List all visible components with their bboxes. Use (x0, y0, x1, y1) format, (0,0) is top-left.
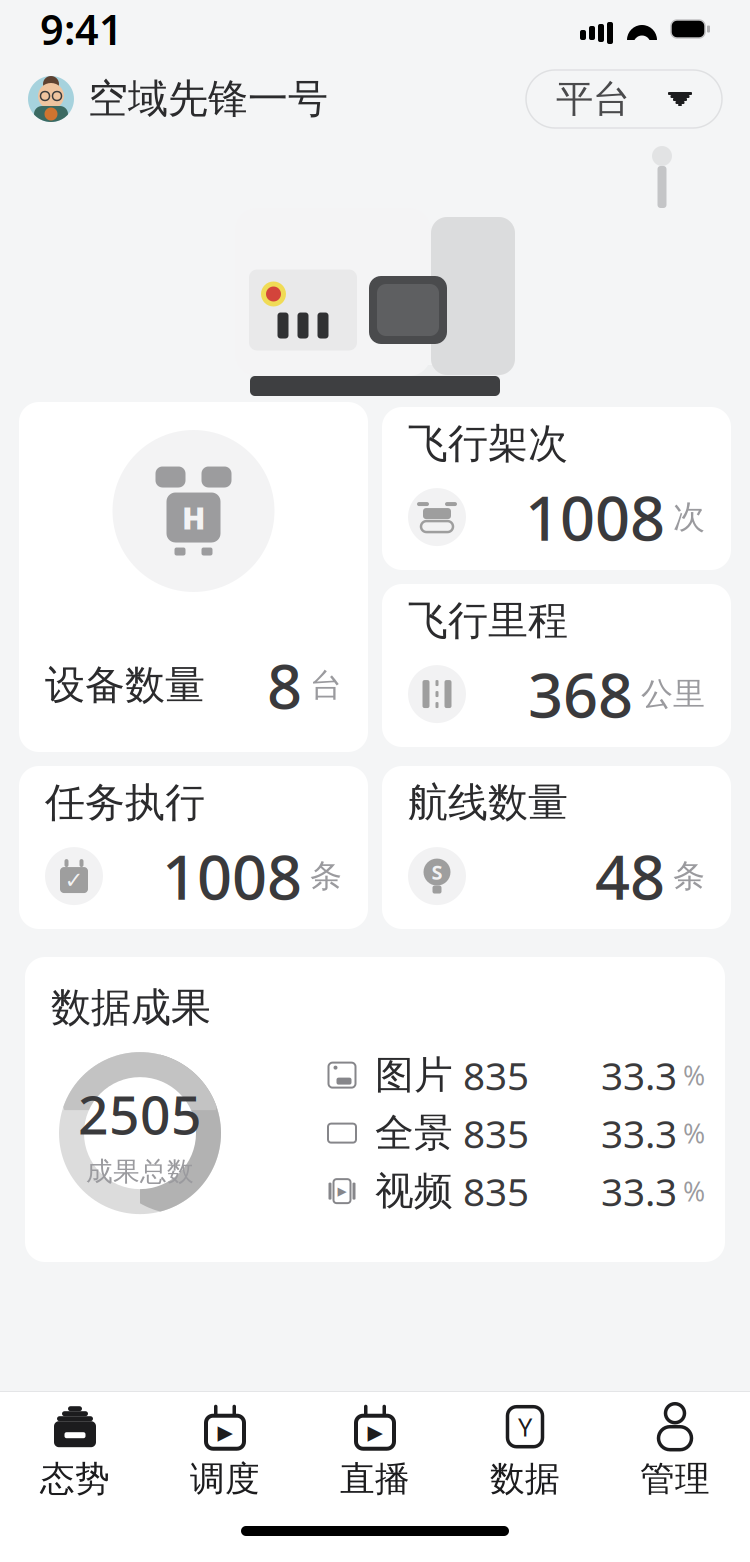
staticText: 9:41 (40, 2, 123, 56)
staticText: 33.3 (601, 1107, 677, 1159)
staticText: 视频 (375, 1167, 453, 1215)
staticText: 2505 (78, 1078, 202, 1149)
staticText: 1008 (162, 835, 302, 917)
staticText: 成果总数 (86, 1155, 194, 1188)
staticText: S (431, 859, 442, 885)
staticText: 图片 (375, 1051, 453, 1099)
staticText: 368 (528, 653, 633, 735)
staticText: H (182, 497, 205, 538)
staticText: 台 (310, 666, 342, 705)
staticText: 设备数量 (45, 661, 205, 710)
staticText: 835 (463, 1165, 529, 1217)
button[interactable]: Y (450, 1392, 600, 1500)
staticText: % (683, 1115, 705, 1151)
staticText: 全景 (375, 1109, 453, 1157)
staticText: 航线数量 (408, 778, 568, 827)
staticText: 835 (463, 1107, 529, 1159)
staticText: 飞行架次 (408, 419, 568, 468)
staticText: ✓ (64, 867, 83, 893)
staticText: 数据 (490, 1458, 560, 1500)
staticText: 次 (673, 497, 705, 537)
staticText: 数据成果 (51, 983, 211, 1032)
button[interactable]: 飞行里程 (382, 584, 731, 747)
button[interactable]: ▶ (150, 1392, 300, 1500)
button[interactable]: H (19, 402, 368, 752)
button[interactable]: 空域先锋一号 (28, 74, 328, 123)
staticText: 33.3 (601, 1165, 677, 1217)
staticText: 835 (463, 1049, 529, 1101)
staticText: 任务执行 (45, 778, 205, 827)
staticText: 调度 (190, 1458, 260, 1500)
staticText: 1008 (525, 476, 665, 558)
button[interactable]: 态势 (0, 1392, 150, 1500)
staticText: 48 (595, 835, 665, 917)
staticText: 直播 (340, 1458, 410, 1500)
staticText: Y (518, 1410, 532, 1443)
staticText: 公里 (641, 674, 705, 714)
button[interactable]: 管理 (600, 1392, 750, 1500)
staticText: ▶ (337, 1184, 346, 1198)
staticText: 条 (310, 856, 342, 896)
button[interactable]: 飞行架次 (382, 407, 731, 570)
staticText: ▶ (367, 1421, 382, 1444)
staticText: 态势 (40, 1458, 110, 1500)
button[interactable]: 平台 (526, 70, 722, 128)
staticText: ▶ (217, 1421, 232, 1444)
staticText: 8 (267, 645, 302, 726)
button[interactable]: ▶ (300, 1392, 450, 1500)
staticText: % (683, 1173, 705, 1209)
staticText: 条 (673, 856, 705, 896)
staticText: 管理 (640, 1458, 710, 1500)
button[interactable]: 任务执行 (19, 766, 368, 929)
staticText: 平台 (556, 76, 630, 122)
button[interactable]: 航线数量 (382, 766, 731, 929)
staticText: % (683, 1057, 705, 1093)
staticText: 空域先锋一号 (88, 74, 328, 123)
staticText: 飞行里程 (408, 596, 568, 645)
staticText: 33.3 (601, 1049, 677, 1101)
